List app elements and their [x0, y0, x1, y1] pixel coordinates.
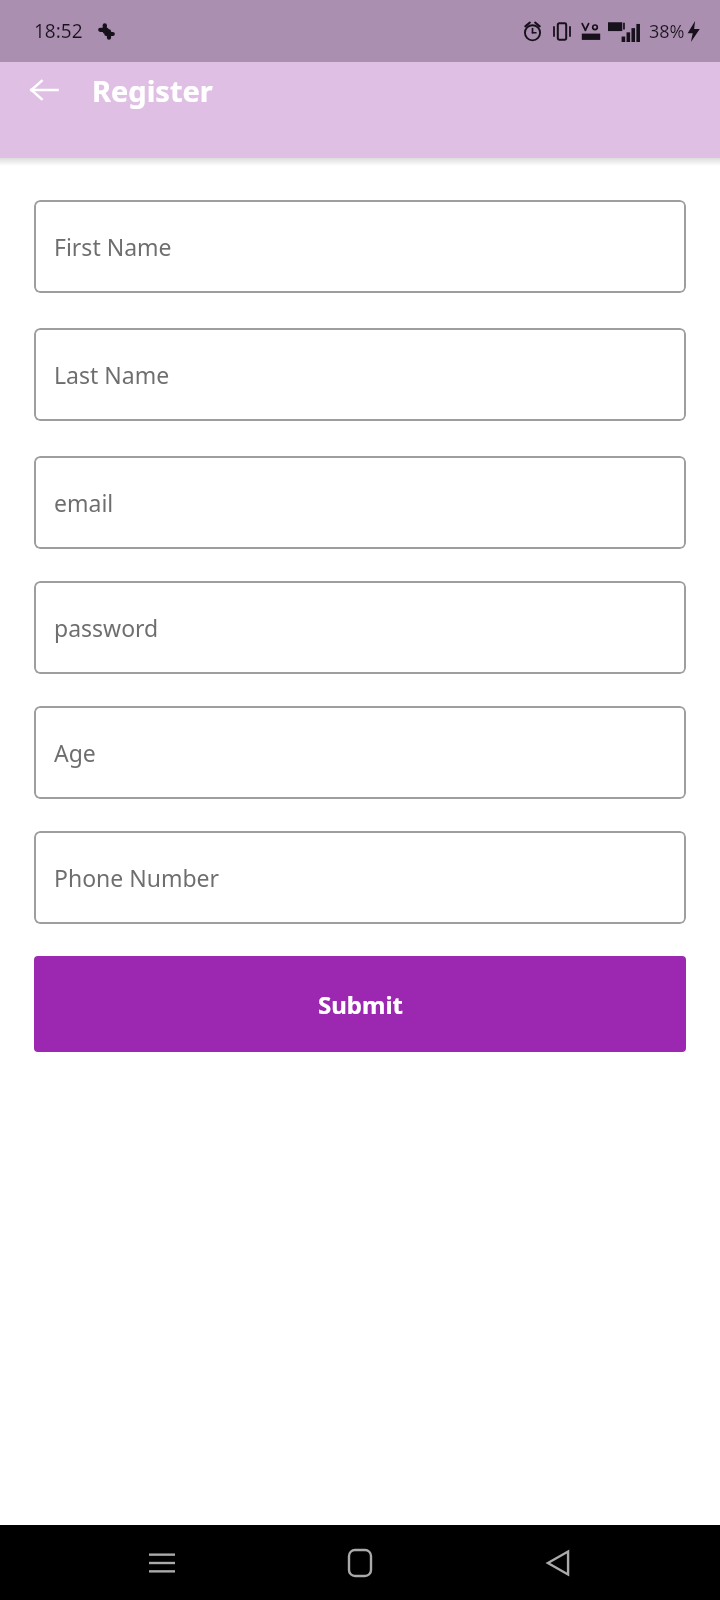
button[interactable]: email: [34, 456, 686, 549]
staticText: Last Name: [54, 359, 170, 390]
button[interactable]: Submit: [34, 956, 686, 1052]
staticText: Age: [54, 737, 96, 768]
button[interactable]: Last Name: [34, 328, 686, 421]
staticText: Phone Number: [54, 862, 220, 893]
button[interactable]: Phone Number: [34, 831, 686, 924]
button[interactable]: Home: [324, 1527, 396, 1599]
staticText: Submit: [318, 988, 403, 1021]
staticText: First Name: [54, 231, 172, 262]
button[interactable]: Recent apps: [126, 1527, 198, 1599]
staticText: 18:52: [34, 18, 83, 44]
button[interactable]: Age: [34, 706, 686, 799]
staticText: Register: [92, 71, 213, 110]
button[interactable]: password: [34, 581, 686, 674]
button[interactable]: First Name: [34, 200, 686, 293]
staticText: password: [54, 612, 159, 643]
button[interactable]: Back: [16, 62, 72, 118]
button[interactable]: Back: [522, 1527, 594, 1599]
staticText: 38%: [649, 19, 685, 44]
staticText: email: [54, 487, 114, 518]
